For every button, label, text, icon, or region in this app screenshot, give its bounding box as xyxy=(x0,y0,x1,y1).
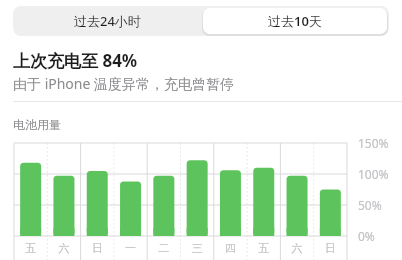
button[interactable]: 过去24小时 xyxy=(13,6,201,36)
button[interactable]: 过去10天 xyxy=(203,8,387,34)
staticText: 过去24小时 xyxy=(74,12,141,30)
staticText: 上次充电至 84% xyxy=(13,49,138,72)
staticText: 电池用量 xyxy=(13,117,61,132)
staticText: 过去10天 xyxy=(268,12,322,30)
staticText: 由于 iPhone 温度异常，充电曾暂停 xyxy=(13,74,235,93)
